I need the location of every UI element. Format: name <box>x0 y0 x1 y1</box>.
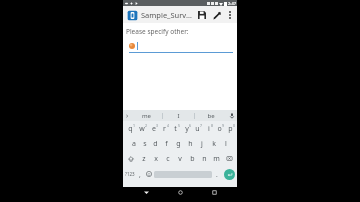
button[interactable]: i <box>203 121 214 136</box>
button[interactable]: Enter <box>221 166 237 182</box>
staticText: Please specify other: <box>126 27 189 36</box>
button[interactable]: g <box>172 136 184 151</box>
staticText: u <box>195 124 200 134</box>
staticText: c <box>166 154 170 164</box>
staticText: d <box>153 139 158 149</box>
button[interactable]: m <box>210 151 222 166</box>
button[interactable]: l <box>220 136 232 151</box>
staticText: z <box>142 154 146 164</box>
staticText: ?123 <box>125 171 135 177</box>
staticText: g <box>176 139 181 149</box>
staticText: w <box>139 124 145 134</box>
staticText: r <box>163 124 166 134</box>
staticText: 7 <box>200 123 203 128</box>
button[interactable]: Recent apps <box>203 187 225 197</box>
button[interactable]: n <box>198 151 210 166</box>
staticText: y <box>185 124 189 134</box>
button[interactable]: s <box>139 136 150 151</box>
staticText: n <box>202 154 207 164</box>
button[interactable]: Shift <box>123 151 138 166</box>
button[interactable]: a <box>128 136 139 151</box>
staticText: l <box>225 139 227 149</box>
staticText: 6 <box>189 123 192 128</box>
button[interactable]: More options <box>223 8 236 21</box>
staticText: m <box>213 154 220 164</box>
staticText: t <box>174 124 177 134</box>
button[interactable]: x <box>150 151 162 166</box>
button[interactable]: c <box>162 151 174 166</box>
button[interactable]: j <box>196 136 208 151</box>
button[interactable]: y <box>181 121 192 136</box>
staticText: v <box>178 154 182 164</box>
staticText: a <box>132 139 136 149</box>
staticText: I <box>177 112 180 120</box>
staticText: me <box>142 112 151 120</box>
staticText: j <box>201 139 203 149</box>
button[interactable]: q <box>124 121 136 136</box>
staticText: q <box>128 124 133 134</box>
button[interactable]: z <box>138 151 150 166</box>
staticText: 1 <box>133 123 136 128</box>
button[interactable]: t <box>170 121 181 136</box>
staticText: b <box>190 154 195 164</box>
staticText: , <box>139 170 141 179</box>
button[interactable]: Voice input <box>226 110 237 121</box>
staticText: x <box>154 154 158 164</box>
staticText: 4 <box>167 123 170 128</box>
staticText: h <box>188 139 193 149</box>
staticText: . <box>216 170 218 179</box>
staticText: 0 <box>233 123 236 128</box>
staticText: 8 <box>211 123 214 128</box>
button[interactable]: ?123 <box>123 166 136 182</box>
button[interactable]: . <box>213 166 221 182</box>
staticText: 2 <box>145 123 148 128</box>
staticText: p <box>228 124 233 134</box>
staticText: Sample_Surve… <box>141 10 195 20</box>
button[interactable]: me <box>131 110 162 121</box>
button[interactable]: d <box>150 136 161 151</box>
button[interactable]: I <box>163 110 194 121</box>
staticText: f <box>165 139 168 149</box>
staticText: be <box>207 112 215 120</box>
button[interactable]: k <box>208 136 220 151</box>
button[interactable]: Edit <box>209 8 223 22</box>
staticText: 5 <box>178 123 181 128</box>
staticText: s <box>143 139 147 149</box>
button[interactable]: Emoji <box>144 166 153 182</box>
staticText: i <box>208 124 210 134</box>
button[interactable]: p <box>225 121 236 136</box>
button[interactable]: u <box>192 121 203 136</box>
button[interactable]: e <box>148 121 159 136</box>
button[interactable]: Home <box>169 187 191 197</box>
staticText: › <box>126 111 129 121</box>
button[interactable]: Backspace <box>222 151 237 166</box>
button[interactable]: Navigate up <box>126 9 138 21</box>
button[interactable]: be <box>195 110 226 121</box>
staticText: e <box>152 124 156 134</box>
button[interactable]: r <box>159 121 170 136</box>
button[interactable] <box>129 42 233 53</box>
button[interactable]: v <box>174 151 186 166</box>
button[interactable]: Expand suggestions <box>123 110 131 121</box>
button[interactable]: w <box>136 121 148 136</box>
button[interactable]: b <box>186 151 198 166</box>
button[interactable]: , <box>136 166 144 182</box>
button[interactable]: h <box>184 136 196 151</box>
staticText: o <box>217 124 222 134</box>
staticText: 2:47 <box>228 1 236 6</box>
button[interactable]: Back <box>135 187 157 197</box>
button[interactable]: Save <box>195 8 209 22</box>
button[interactable]: f <box>161 136 172 151</box>
staticText: k <box>212 139 216 149</box>
staticText: 3 <box>156 123 159 128</box>
staticText: 9 <box>222 123 225 128</box>
button[interactable]: o <box>214 121 225 136</box>
